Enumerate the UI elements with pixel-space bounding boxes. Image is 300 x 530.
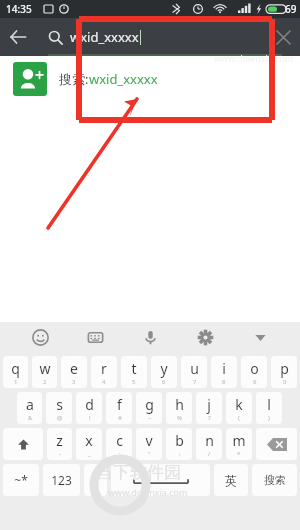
staticText: j <box>207 395 211 414</box>
staticText: n <box>205 431 214 450</box>
staticText: wxid_xxxxx <box>70 28 139 46</box>
button[interactable]: Backspace <box>256 428 297 460</box>
staticText: ; <box>179 450 181 458</box>
staticText: p <box>280 359 289 378</box>
staticText: 123 <box>51 472 72 488</box>
staticText: x <box>85 431 93 450</box>
button[interactable]: Voice input <box>135 322 165 352</box>
staticText: e <box>70 359 78 378</box>
button[interactable]: Hide keyboard <box>245 322 275 352</box>
staticText: 英 <box>225 473 237 488</box>
staticText: ! <box>89 414 91 422</box>
button[interactable]: z <box>47 428 72 460</box>
staticText: 9 <box>253 378 257 386</box>
button[interactable]: b <box>166 428 192 460</box>
staticText: q <box>11 359 20 378</box>
button[interactable]: Clear <box>266 20 300 54</box>
staticText: d <box>85 395 94 414</box>
button[interactable]: 搜索: <box>0 56 300 101</box>
staticText: b <box>175 431 184 450</box>
staticText: l <box>267 395 271 414</box>
button[interactable]: 123 <box>43 464 80 496</box>
button[interactable]: e <box>61 356 87 388</box>
button[interactable] <box>3 428 43 460</box>
staticText: o <box>250 359 259 378</box>
button[interactable]: m <box>226 428 252 460</box>
button[interactable]: n <box>196 428 222 460</box>
staticText: r <box>101 359 107 378</box>
button[interactable]: i <box>211 356 237 388</box>
staticText: wxid_xxxxx <box>89 70 158 88</box>
staticText: ~ <box>148 414 152 422</box>
button[interactable]: t <box>121 356 147 388</box>
staticText: 5 <box>132 378 136 386</box>
button[interactable] <box>111 464 210 496</box>
staticText: s <box>56 395 63 414</box>
button[interactable]: 搜索 <box>252 464 297 496</box>
staticText: w <box>39 359 51 378</box>
button[interactable]: g <box>136 392 162 424</box>
staticText: y <box>160 359 168 378</box>
staticText: _ <box>88 450 91 458</box>
staticText: 搜索: <box>59 70 89 88</box>
staticText: - <box>59 450 61 458</box>
button[interactable]: 英 <box>214 464 248 496</box>
staticText: ) <box>268 414 270 422</box>
button[interactable]: s <box>46 392 72 424</box>
button[interactable]: j <box>196 392 222 424</box>
button[interactable]: w <box>32 356 57 388</box>
staticText: www.downxia.com <box>214 52 294 64</box>
staticText: 69 <box>285 2 297 16</box>
button[interactable]: v <box>136 428 162 460</box>
button[interactable]: h <box>166 392 192 424</box>
button[interactable]: Back <box>0 19 36 55</box>
staticText: 8 <box>222 378 226 386</box>
button[interactable]: ~* <box>3 464 39 496</box>
staticText: t <box>131 359 137 378</box>
button[interactable]: Settings <box>190 322 220 352</box>
staticText: m <box>232 431 246 450</box>
staticText: / <box>208 450 211 458</box>
staticText: c <box>116 431 123 450</box>
button[interactable]: o <box>241 356 267 388</box>
staticText: 14:35 <box>6 2 32 16</box>
staticText: # <box>118 414 122 422</box>
staticText: * <box>237 450 241 458</box>
staticText: v <box>145 431 153 450</box>
button[interactable]: Keyboard layout <box>80 322 110 352</box>
button[interactable]: c <box>106 428 132 460</box>
button[interactable]: x <box>76 428 102 460</box>
staticText: h <box>175 395 184 414</box>
staticText: f <box>117 395 122 414</box>
staticText: 当下软件园 <box>96 462 181 483</box>
staticText: ? <box>208 414 211 422</box>
staticText: 4 <box>102 378 106 386</box>
staticText: % <box>177 414 182 422</box>
button[interactable]: r <box>91 356 117 388</box>
button[interactable]: q <box>3 356 28 388</box>
button[interactable]: p <box>271 356 297 388</box>
button[interactable]: f <box>106 392 132 424</box>
staticText: 3 <box>72 378 76 386</box>
button[interactable]: u <box>181 356 207 388</box>
staticText: 2 <box>43 378 47 386</box>
staticText: ~* <box>14 472 28 488</box>
staticText: 6 <box>162 378 166 386</box>
staticText: u <box>190 359 199 378</box>
button[interactable]: wxid_xxxxx <box>48 28 264 46</box>
staticText: 1 <box>14 378 18 386</box>
button[interactable]: a <box>17 392 42 424</box>
button[interactable]: , <box>84 464 107 496</box>
button[interactable]: k <box>226 392 252 424</box>
button[interactable]: Emoji <box>25 322 55 352</box>
staticText: 0 <box>283 378 287 386</box>
staticText: : <box>119 450 121 458</box>
staticText: g <box>145 395 154 414</box>
staticText: ( <box>238 414 240 422</box>
staticText: 7 <box>193 378 197 386</box>
button[interactable]: y <box>151 356 177 388</box>
button[interactable]: l <box>256 392 282 424</box>
other: Backspace <box>267 438 287 451</box>
button[interactable]: d <box>76 392 102 424</box>
